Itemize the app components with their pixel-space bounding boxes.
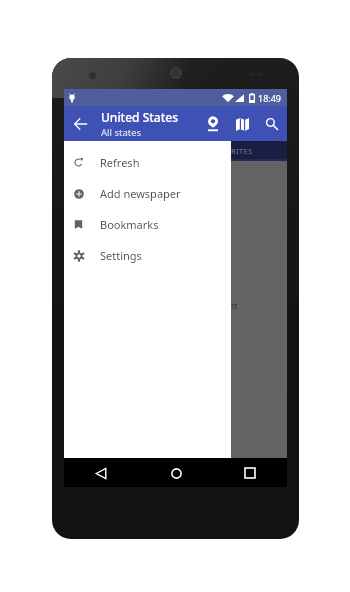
button[interactable]: My location [200,111,226,137]
button[interactable]: Settings [64,240,231,271]
button[interactable]: Map [229,111,255,137]
button[interactable]: Back [90,462,112,484]
staticText: All states [101,126,142,139]
button[interactable]: Back [66,109,95,138]
staticText: Bookmarks [100,217,159,232]
staticText: Settings [100,248,142,263]
button[interactable]: Home [165,462,187,484]
button[interactable]: Search [259,111,285,137]
staticText: United States [101,109,179,125]
button[interactable]: Add newspaper [64,178,231,209]
staticText: FAVORITES [211,146,253,156]
button[interactable]: Bookmarks [64,209,231,240]
staticText: Add newspaper [100,186,181,201]
button[interactable]: Recents [239,462,261,484]
button[interactable]: Refresh [64,147,231,178]
staticText: Refresh [100,155,140,170]
staticText: 18:49 [258,92,282,104]
staticText: ht [229,300,238,312]
